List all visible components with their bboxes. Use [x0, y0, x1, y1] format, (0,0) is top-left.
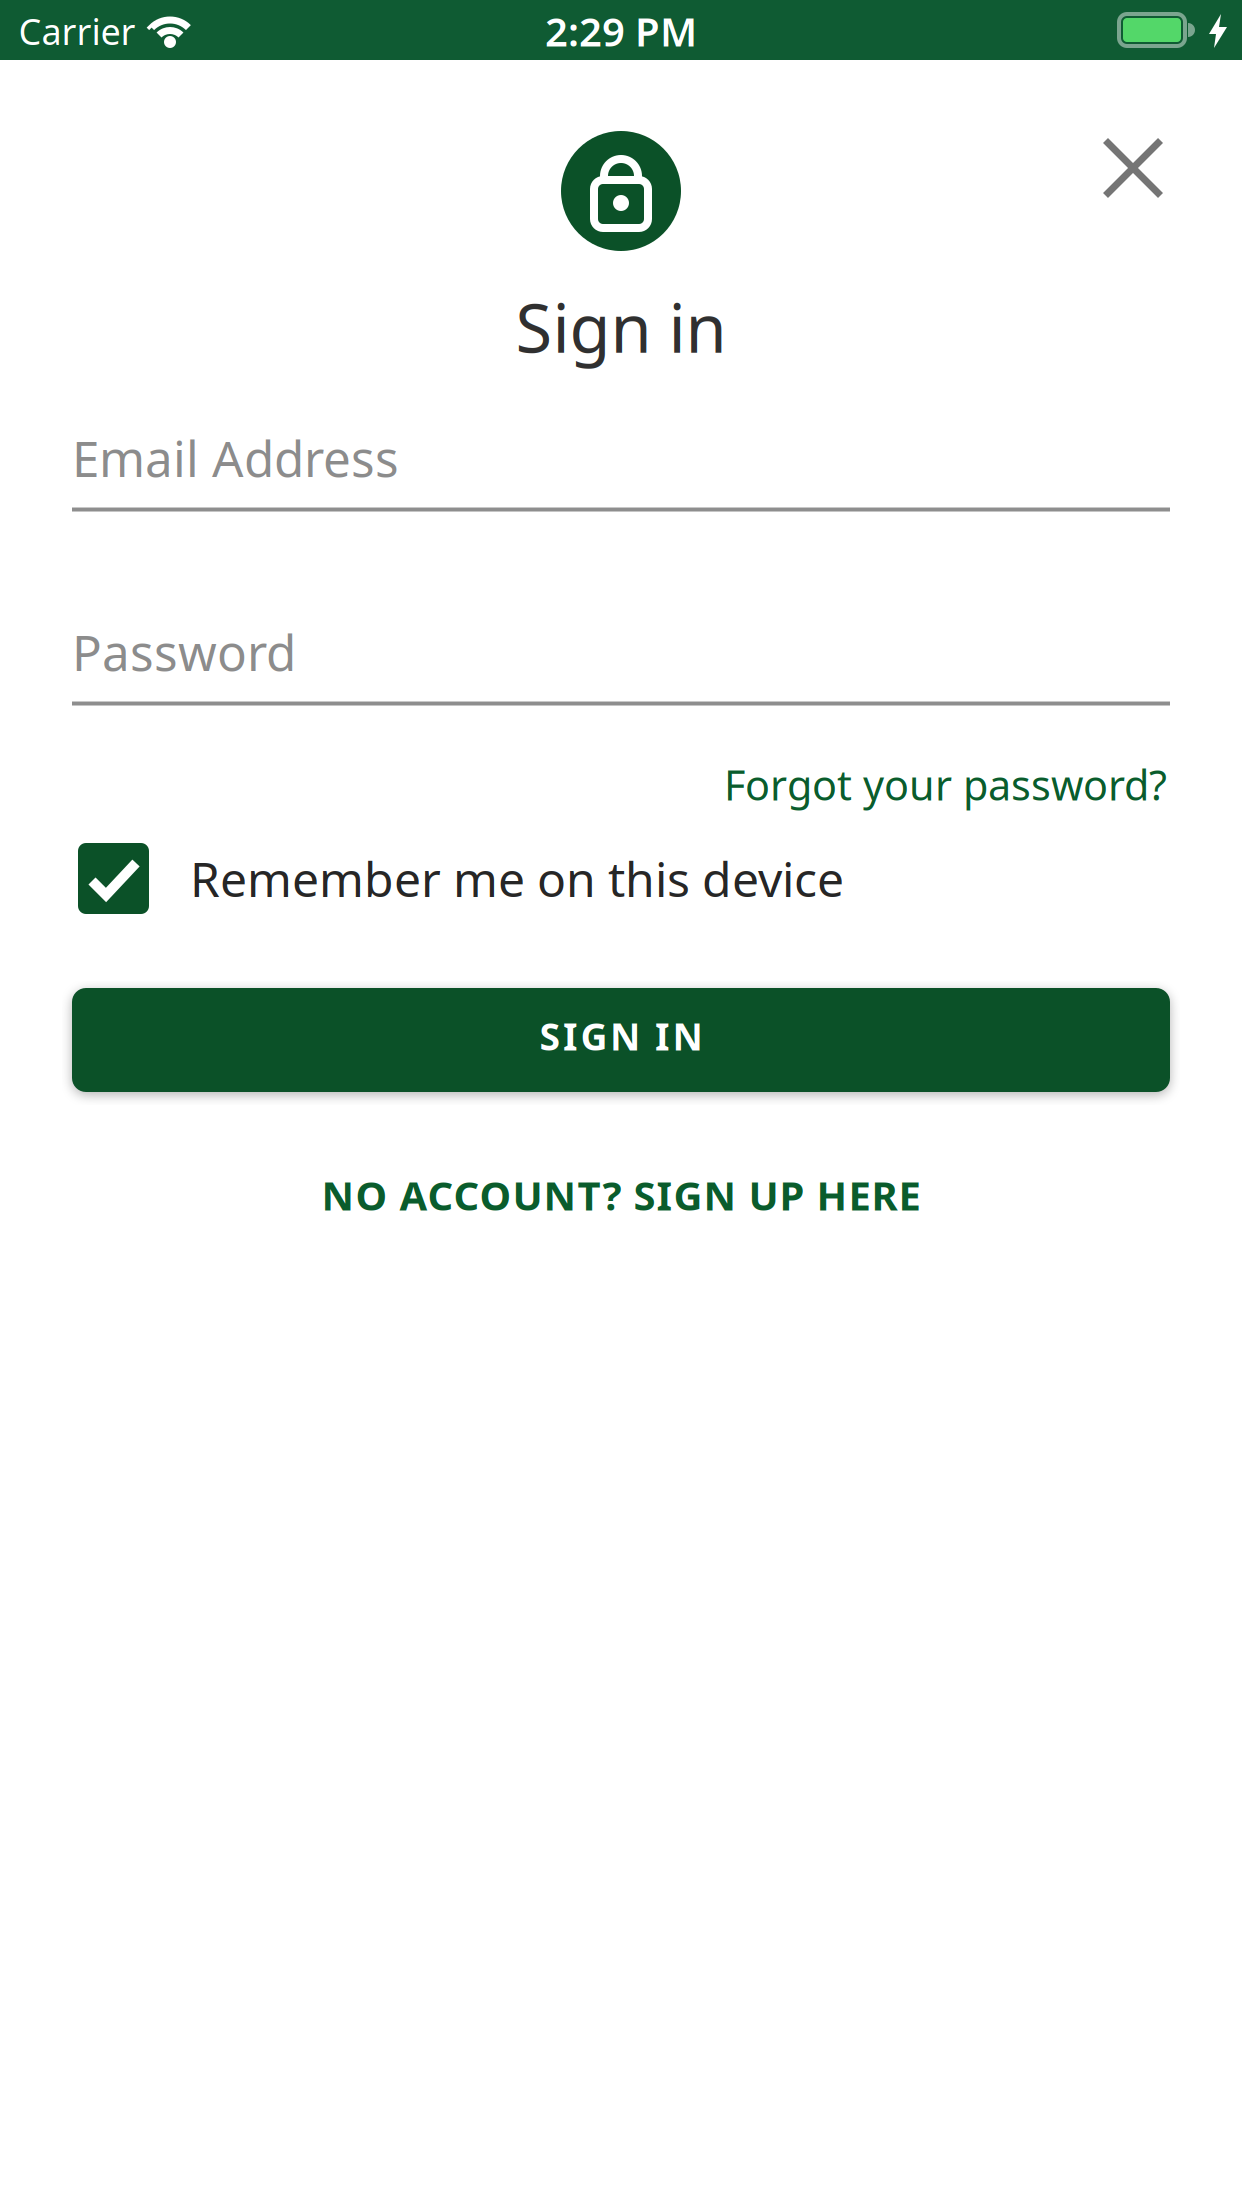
staticText: Remember me on this device	[190, 847, 844, 910]
button[interactable]: Password	[72, 619, 1170, 705]
staticText: NO ACCOUNT? SIGN UP HERE	[321, 1168, 920, 1221]
staticText: Forgot your password?	[724, 757, 1167, 812]
button[interactable]: NO ACCOUNT? SIGN UP HERE	[321, 1168, 920, 1221]
staticText: SIGN IN	[539, 1011, 702, 1061]
staticText: Sign in	[515, 283, 726, 371]
button[interactable]: Remember me on this device	[78, 843, 844, 914]
button[interactable]: Email Address	[72, 425, 1170, 511]
button[interactable]: Close	[1093, 128, 1172, 207]
button[interactable]: Forgot your password?	[724, 757, 1167, 812]
staticText: Email Address	[72, 425, 399, 490]
button[interactable]: SIGN IN	[72, 988, 1170, 1092]
staticText: 2:29 PM	[545, 4, 697, 57]
staticText: Carrier	[18, 7, 135, 55]
staticText: Password	[72, 619, 296, 684]
